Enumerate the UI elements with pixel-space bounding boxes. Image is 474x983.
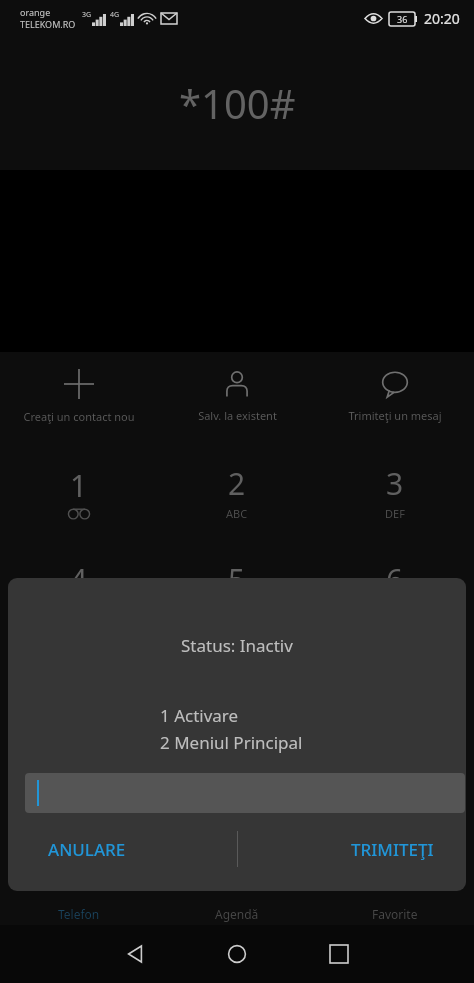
button[interactable]: Creaţi un contact nou <box>0 352 158 440</box>
staticText: Telefon <box>58 906 100 922</box>
button[interactable]: Home <box>201 925 273 983</box>
staticText: 2 <box>228 463 246 504</box>
button[interactable] <box>25 773 465 813</box>
staticText: DEF <box>385 506 405 521</box>
button[interactable]: 2 <box>158 444 316 540</box>
button[interactable]: ANULARE <box>48 826 198 872</box>
button[interactable]: Back <box>99 925 171 983</box>
staticText: 4G <box>110 10 120 20</box>
staticText: ABC <box>226 506 248 521</box>
button[interactable]: Agendă <box>158 890 316 934</box>
staticText: ANULARE <box>48 838 126 861</box>
staticText: 6 <box>386 559 404 600</box>
button[interactable]: 1 <box>0 444 158 540</box>
staticText: 4 <box>70 559 88 600</box>
button[interactable]: 3 <box>316 444 474 540</box>
button[interactable]: 5 <box>158 540 316 636</box>
button[interactable]: Telefon <box>0 890 158 934</box>
staticText: 3 <box>386 463 404 504</box>
button[interactable]: Favorite <box>316 890 474 934</box>
staticText: 1 Activare <box>160 704 239 727</box>
staticText: 1 <box>70 465 88 506</box>
button[interactable]: Recents <box>303 925 375 983</box>
staticText: Creaţi un contact nou <box>23 409 135 424</box>
staticText: TRIMITEŢI <box>351 838 434 861</box>
staticText: 3G <box>82 10 92 20</box>
staticText: Favorite <box>372 906 418 922</box>
staticText: 20:20 <box>424 9 460 28</box>
staticText: TELEKOM.RO <box>20 18 76 30</box>
staticText: orange <box>20 6 51 18</box>
button[interactable]: TRIMITEŢI <box>284 826 434 872</box>
staticText: Agendă <box>215 906 259 922</box>
button[interactable]: 4 <box>0 540 158 636</box>
staticText: *100# <box>179 76 296 130</box>
button[interactable]: 6 <box>316 540 474 636</box>
staticText: 5 <box>228 559 246 600</box>
staticText: Salv. la existent <box>198 408 277 423</box>
staticText: Trimiteţi un mesaj <box>348 408 442 423</box>
button[interactable]: Trimiteţi un mesaj <box>316 352 474 440</box>
staticText: Status: Inactiv <box>181 634 293 657</box>
staticText: 2 Meniul Principal <box>160 731 303 754</box>
button[interactable]: Salv. la existent <box>158 352 316 440</box>
staticText: 36 <box>397 13 408 25</box>
